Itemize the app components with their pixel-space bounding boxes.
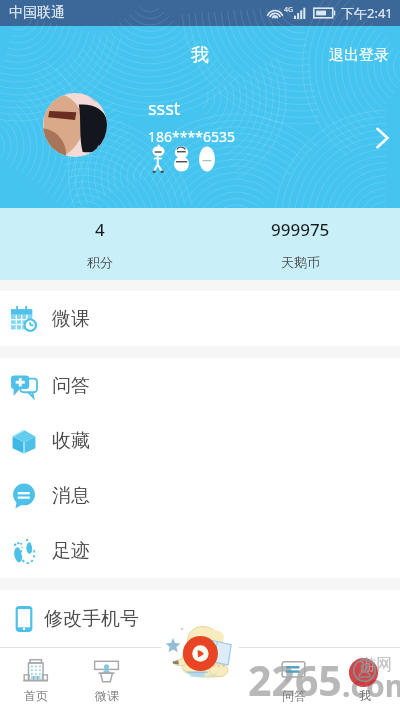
staticText: 微课 xyxy=(95,688,119,703)
button[interactable]: 播放 xyxy=(161,619,239,683)
staticText: 我 xyxy=(191,44,209,67)
staticText: 186****6535 xyxy=(148,127,235,146)
staticText: 游网 xyxy=(360,655,392,675)
button[interactable]: 微课 xyxy=(0,291,400,346)
staticText: 天鹅币 xyxy=(281,254,320,270)
button[interactable]: ssst xyxy=(0,26,400,208)
staticText: 问答 xyxy=(282,688,306,703)
button[interactable]: 4 xyxy=(0,208,200,280)
button[interactable]: 消息 xyxy=(0,468,400,523)
button[interactable]: 收藏 xyxy=(0,413,400,468)
staticText: 999975 xyxy=(271,218,330,241)
staticText: 足迹 xyxy=(52,539,90,563)
staticText: 收藏 xyxy=(52,429,90,453)
staticText: 微课 xyxy=(52,307,90,331)
button[interactable]: 修改手机号 xyxy=(0,590,400,647)
button[interactable]: 首页 xyxy=(0,647,71,711)
staticText: 我 xyxy=(359,688,371,703)
staticText: 积分 xyxy=(87,254,113,270)
button[interactable]: 退出登录 xyxy=(318,36,400,75)
staticText: 问答 xyxy=(52,374,90,398)
button[interactable]: 足迹 xyxy=(0,523,400,578)
button[interactable]: 我 xyxy=(329,647,400,711)
staticText: .com xyxy=(342,665,400,706)
button[interactable]: 问答 xyxy=(258,647,329,711)
staticText: 下午2:41 xyxy=(341,4,393,22)
button[interactable]: 999975 xyxy=(200,208,400,280)
staticText: 2265 xyxy=(248,652,342,708)
staticText: 退出登录 xyxy=(329,46,389,65)
staticText: 4 xyxy=(95,218,105,241)
staticText: 4G xyxy=(284,5,294,15)
staticText: 消息 xyxy=(52,484,90,508)
button[interactable]: 微课 xyxy=(71,647,142,711)
staticText: 修改手机号 xyxy=(44,607,139,631)
button[interactable]: 问答 xyxy=(0,358,400,413)
staticText: ssst xyxy=(148,96,181,121)
staticText: 中国联通 xyxy=(9,4,65,22)
staticText: 首页 xyxy=(24,688,48,703)
